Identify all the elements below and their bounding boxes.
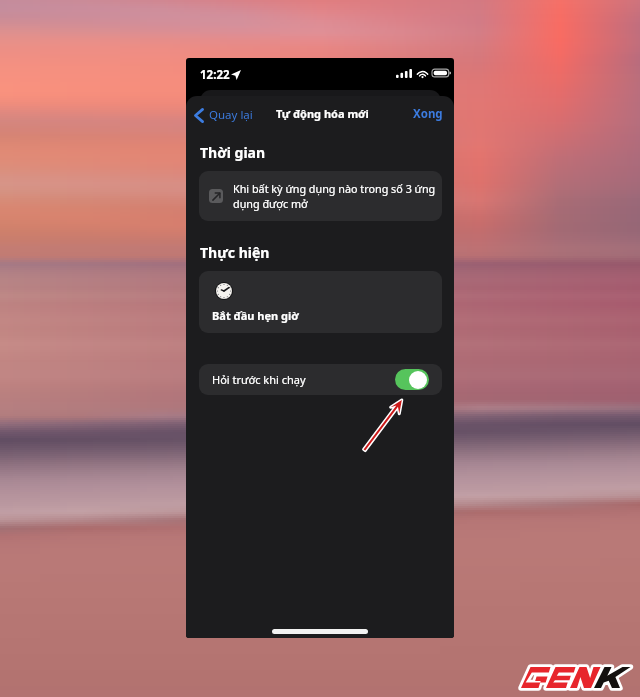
staticText: Khi bất kỳ ứng dụng nào trong số 3 ứng d… [233,181,438,211]
button[interactable]: Khi bất kỳ ứng dụng nào trong số 3 ứng d… [199,171,442,221]
staticText: Thời gian [200,143,266,162]
button[interactable]: Quay lại [190,102,261,128]
staticText: Tự động hóa mới [276,106,369,121]
staticText: Thực hiện [200,243,270,262]
staticText: Bắt đầu hẹn giờ [212,308,299,323]
staticText: Hỏi trước khi chạy [212,372,306,387]
staticText: 12:22 [200,67,230,83]
button[interactable]: Bắt đầu hẹn giờ [199,271,442,333]
button[interactable]: Hỏi trước khi chạy [395,369,429,390]
button[interactable]: Xong [405,102,451,126]
button[interactable]: Hỏi trước khi chạy [199,364,442,395]
staticText: Quay lại [209,107,253,123]
